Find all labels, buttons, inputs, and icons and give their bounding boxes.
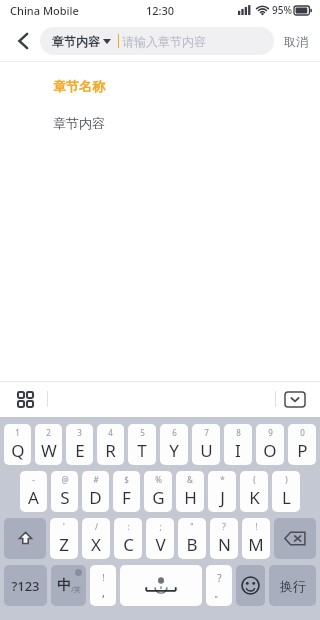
- button[interactable]: Backspace: [274, 518, 316, 559]
- button[interactable]: 4: [97, 424, 124, 465]
- button[interactable]: (: [240, 471, 268, 512]
- button[interactable]: #: [82, 471, 109, 512]
- button[interactable]: /: [82, 518, 110, 559]
- staticText: 4: [108, 427, 113, 438]
- button[interactable]: @: [51, 471, 78, 512]
- button[interactable]: Emoji: [236, 565, 265, 606]
- staticText: A: [28, 486, 39, 509]
- button[interactable]: &: [176, 471, 204, 512]
- button[interactable]: 章节内容: [38, 104, 120, 142]
- button[interactable]: 6: [160, 424, 188, 465]
- staticText: 。: [214, 587, 224, 600]
- staticText: ;: [159, 521, 162, 532]
- button[interactable]: 7: [192, 424, 220, 465]
- button[interactable]: ': [50, 518, 78, 559]
- button[interactable]: 章节名称: [38, 68, 120, 104]
- staticText: China Mobile: [10, 3, 79, 18]
- staticText: D: [89, 486, 102, 509]
- button[interactable]: 章节内容: [52, 34, 111, 49]
- staticText: 8: [236, 427, 241, 438]
- staticText: 取消: [284, 34, 308, 49]
- button[interactable]: ): [272, 471, 300, 512]
- staticText: 95%: [272, 3, 292, 17]
- staticText: 章节内容: [53, 115, 105, 131]
- button[interactable]: 9: [256, 424, 284, 465]
- staticText: 2: [46, 427, 51, 438]
- button[interactable]: Shift: [4, 518, 46, 559]
- staticText: 5: [140, 427, 145, 438]
- staticText: B: [186, 533, 198, 556]
- staticText: V: [155, 533, 166, 556]
- button[interactable]: $: [113, 471, 140, 512]
- staticText: K: [249, 486, 260, 509]
- staticText: @: [61, 474, 69, 485]
- staticText: 章节名称: [53, 78, 105, 94]
- staticText: !: [102, 571, 105, 583]
- staticText: Z: [59, 533, 69, 556]
- staticText: P: [297, 439, 308, 462]
- button[interactable]: ?: [206, 565, 232, 606]
- staticText: (: [253, 474, 256, 485]
- staticText: 请输入章节内容: [122, 34, 206, 49]
- button[interactable]: -: [20, 471, 47, 512]
- staticText: R: [105, 439, 116, 462]
- button[interactable]: More tools: [12, 386, 38, 412]
- staticText: 9: [268, 427, 273, 438]
- staticText: 3: [77, 427, 82, 438]
- staticText: J: [220, 486, 225, 509]
- button[interactable]: Back: [10, 28, 36, 54]
- staticText: ?123: [11, 577, 40, 595]
- staticText: ): [285, 474, 288, 485]
- staticText: #: [93, 474, 99, 485]
- staticText: $: [124, 474, 129, 485]
- staticText: M: [248, 533, 264, 556]
- button[interactable]: %: [144, 471, 172, 512]
- staticText: E: [75, 439, 85, 462]
- staticText: 7: [204, 427, 209, 438]
- staticText: O: [263, 439, 277, 462]
- staticText: ': [63, 521, 65, 532]
- button[interactable]: Space: [120, 565, 202, 606]
- button[interactable]: ": [178, 518, 206, 559]
- button[interactable]: 中: [51, 565, 86, 606]
- staticText: 1: [15, 427, 20, 438]
- staticText: /英: [71, 585, 81, 595]
- staticText: ,: [102, 585, 105, 600]
- button[interactable]: 5: [128, 424, 156, 465]
- staticText: Q: [11, 439, 25, 462]
- button[interactable]: :: [114, 518, 142, 559]
- staticText: ?: [217, 571, 222, 585]
- button[interactable]: *: [208, 471, 236, 512]
- staticText: 中: [57, 577, 71, 595]
- staticText: X: [91, 533, 101, 556]
- staticText: :: [127, 521, 130, 532]
- staticText: /: [95, 521, 98, 532]
- button[interactable]: 8: [224, 424, 252, 465]
- button[interactable]: 3: [66, 424, 93, 465]
- staticText: H: [184, 486, 197, 509]
- staticText: L: [282, 486, 291, 509]
- button[interactable]: 1: [4, 424, 31, 465]
- button[interactable]: ?123: [4, 565, 47, 606]
- staticText: W: [41, 439, 57, 462]
- button[interactable]: Hide keyboard: [282, 386, 308, 412]
- staticText: *: [220, 474, 225, 485]
- staticText: ": [190, 521, 194, 532]
- button[interactable]: !: [90, 565, 116, 606]
- staticText: 6: [172, 427, 177, 438]
- button[interactable]: 0: [288, 424, 316, 465]
- staticText: &: [187, 474, 193, 485]
- staticText: !: [255, 521, 258, 532]
- staticText: 12:30: [146, 3, 175, 18]
- button[interactable]: !: [242, 518, 270, 559]
- staticText: I: [235, 439, 241, 462]
- button[interactable]: 2: [35, 424, 62, 465]
- staticText: U: [200, 439, 213, 462]
- staticText: Y: [169, 439, 179, 462]
- button[interactable]: 换行: [269, 565, 316, 606]
- button[interactable]: 取消: [282, 28, 310, 55]
- staticText: C: [123, 533, 134, 556]
- button[interactable]: ;: [146, 518, 174, 559]
- button[interactable]: ?: [210, 518, 238, 559]
- staticText: 换行: [280, 578, 306, 594]
